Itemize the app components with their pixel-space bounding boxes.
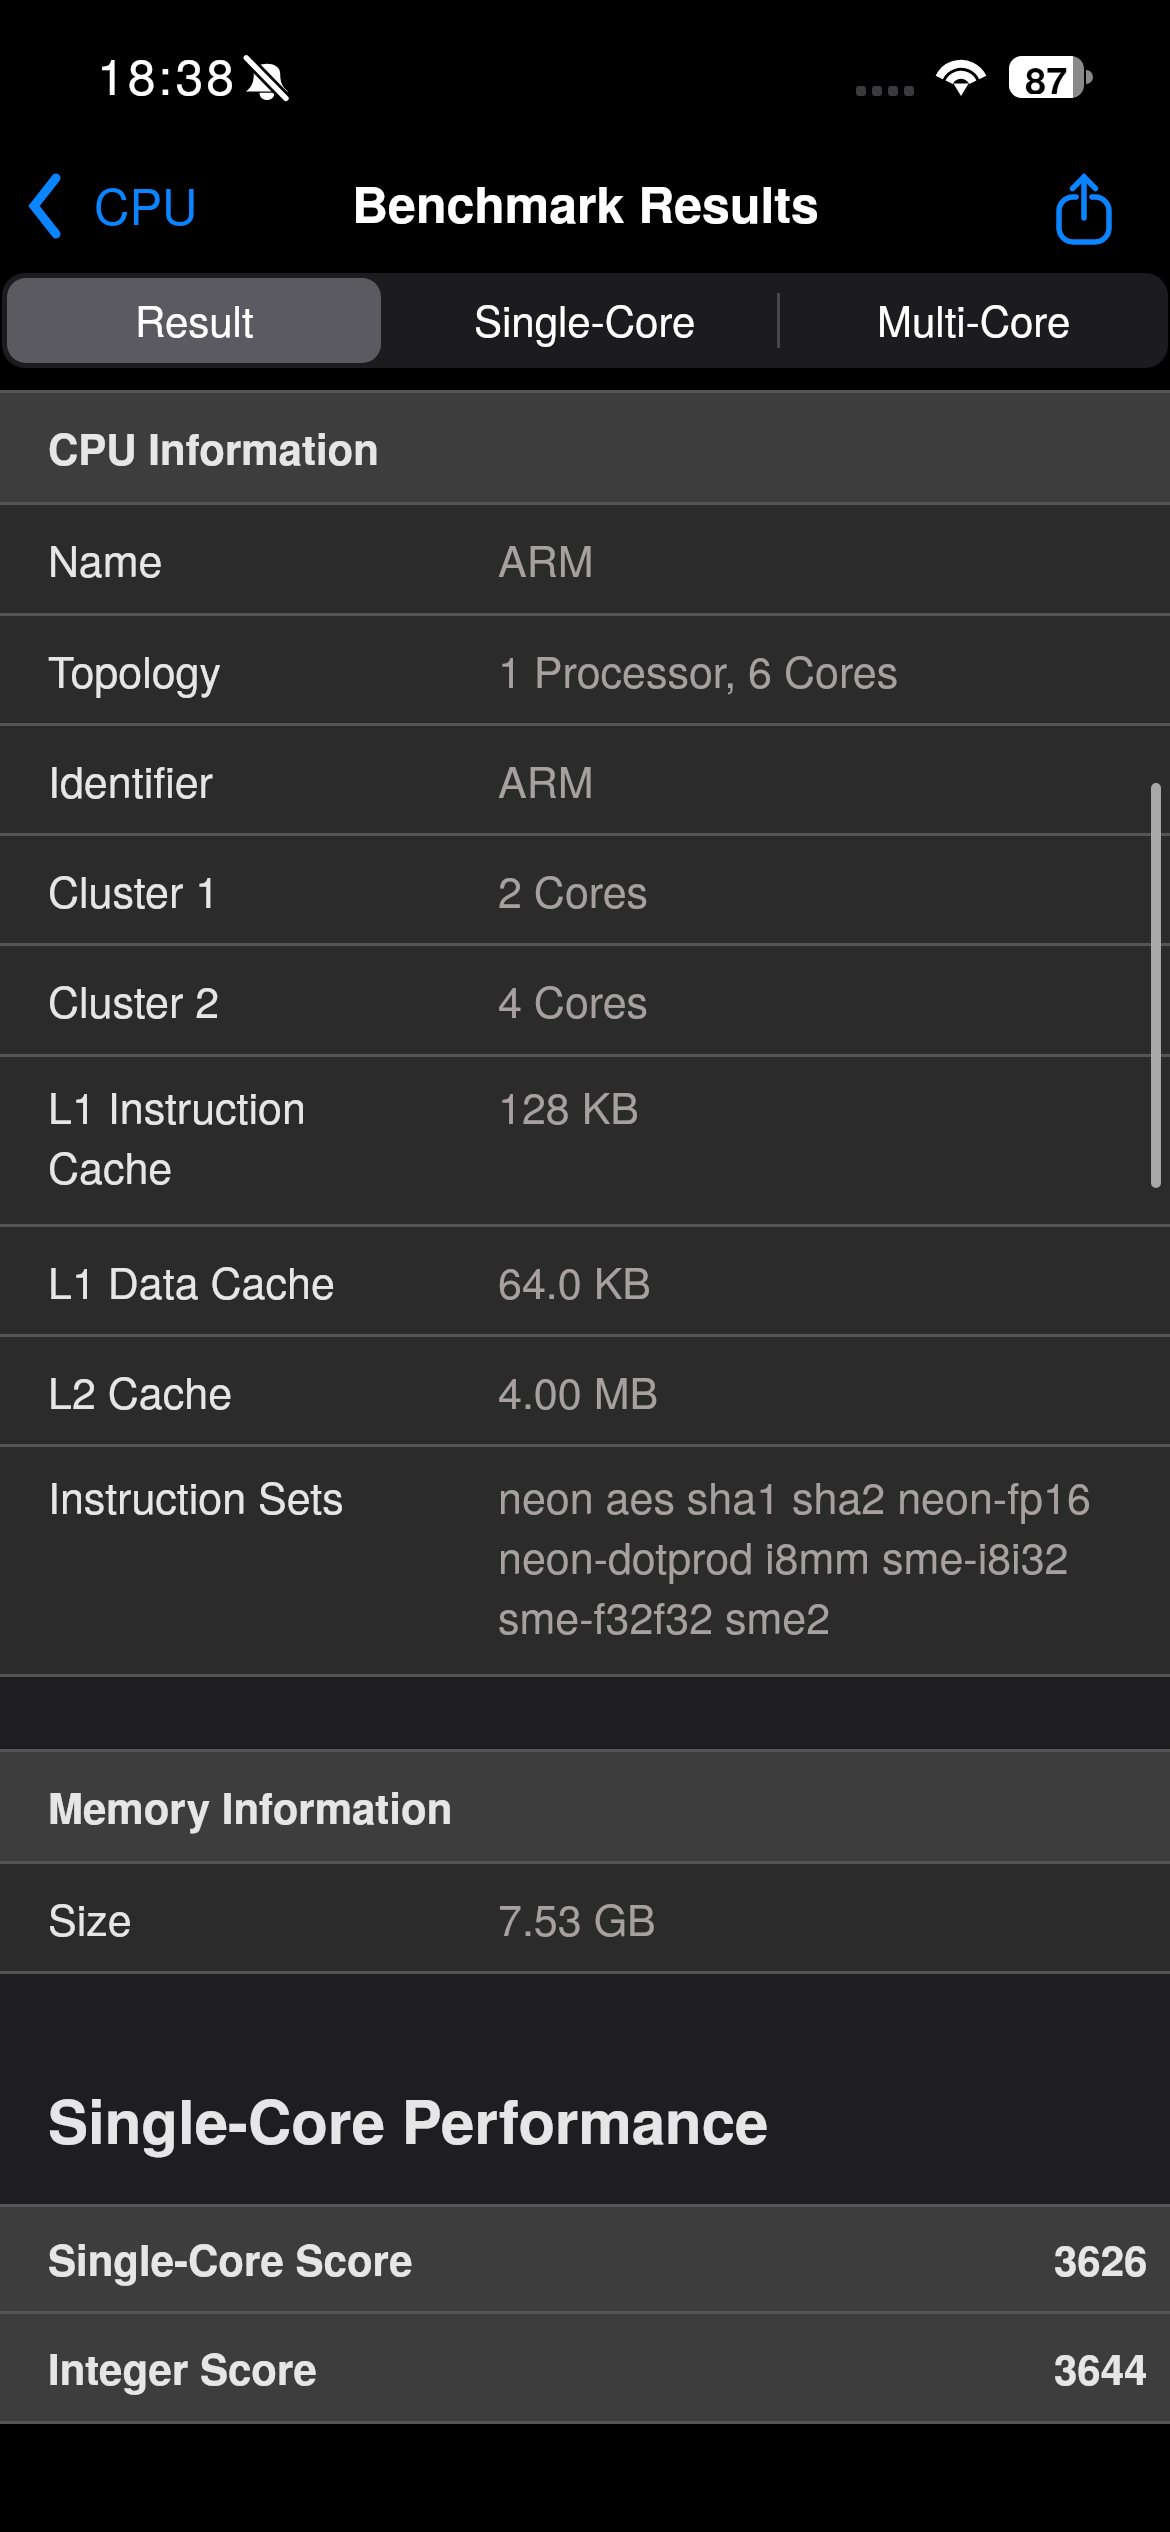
button[interactable]: Cluster 2 (0, 946, 1170, 1054)
staticText: Multi-Core (877, 289, 1071, 349)
staticText: Benchmark Results (352, 167, 819, 239)
button[interactable]: Single-Core Score (0, 2207, 1170, 2311)
staticText: 7.53 GB (498, 1888, 1098, 1948)
staticText: ARM (498, 750, 1098, 810)
staticText: Single-Core Performance (48, 2076, 769, 2162)
staticText: 2 Cores (498, 860, 1098, 920)
staticText: Topology (48, 640, 388, 700)
staticText: Name (48, 529, 388, 589)
staticText: Identifier (48, 750, 388, 810)
staticText: ARM (498, 529, 1098, 589)
staticText: 3644 (1054, 2338, 1148, 2398)
staticText: 87 (1025, 56, 1068, 94)
staticText: L2 Cache (48, 1361, 388, 1421)
staticText: Integer Score (48, 2338, 317, 2398)
staticText: Memory Information (48, 1777, 453, 1837)
staticText: Size (48, 1888, 388, 1948)
button[interactable]: L1 Instruction Cache (0, 1057, 1170, 1224)
button[interactable]: Name (0, 505, 1170, 613)
staticText: 64.0 KB (498, 1251, 1098, 1311)
button[interactable]: Single-Core (390, 278, 780, 363)
staticText: 1 Processor, 6 Cores (498, 640, 1098, 700)
staticText: 4.00 MB (498, 1361, 1098, 1421)
button[interactable]: Identifier (0, 726, 1170, 833)
staticText: Single-Core Score (48, 2229, 413, 2289)
staticText: Cluster 2 (48, 970, 388, 1030)
staticText: 4 Cores (498, 970, 1098, 1030)
button[interactable]: CPU (30, 142, 220, 242)
button[interactable]: Size (0, 1864, 1170, 1971)
button[interactable]: Cluster 1 (0, 836, 1170, 943)
button[interactable]: Integer Score (0, 2314, 1170, 2421)
staticText: CPU Information (48, 418, 379, 478)
button[interactable]: L1 Data Cache (0, 1227, 1170, 1334)
staticText: Cluster 1 (48, 860, 388, 920)
staticText: Single-Core (474, 289, 696, 349)
staticText: Instruction Sets (48, 1466, 388, 1526)
button[interactable]: L2 Cache (0, 1337, 1170, 1444)
button[interactable]: Share (1042, 171, 1126, 263)
staticText: 128 KB (498, 1076, 1098, 1136)
button[interactable]: Result (7, 278, 381, 363)
staticText: CPU (94, 169, 198, 239)
button[interactable]: Topology (0, 616, 1170, 723)
staticText: Result (135, 289, 254, 349)
staticText: neon aes sha1 sha2 neon-fp16 neon-dotpro… (498, 1466, 1098, 1646)
staticText: 3626 (1054, 2229, 1148, 2289)
staticText: 18:38 (97, 38, 238, 110)
staticText: L1 Data Cache (48, 1251, 388, 1311)
button[interactable]: Multi-Core (780, 278, 1168, 363)
button[interactable]: Instruction Sets (0, 1447, 1170, 1674)
staticText: L1 Instruction Cache (48, 1076, 388, 1196)
